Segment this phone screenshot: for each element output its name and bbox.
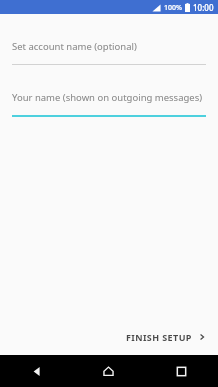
staticText: Your name (shown on outgoing messages) [12,91,203,104]
staticText: 100% [164,3,182,13]
staticText: 10:00 [193,2,214,13]
staticText: Set account name (optional) [12,40,137,53]
staticText: FINISH SETUP [126,331,192,343]
button[interactable]: Back [0,355,72,387]
button[interactable]: Home [72,355,145,387]
button[interactable]: Set account name (optional) [0,40,218,65]
button[interactable]: FINISH SETUP [114,321,218,353]
button[interactable]: Your name (shown on outgoing messages) [0,91,218,117]
button[interactable]: Recent apps [145,355,218,387]
